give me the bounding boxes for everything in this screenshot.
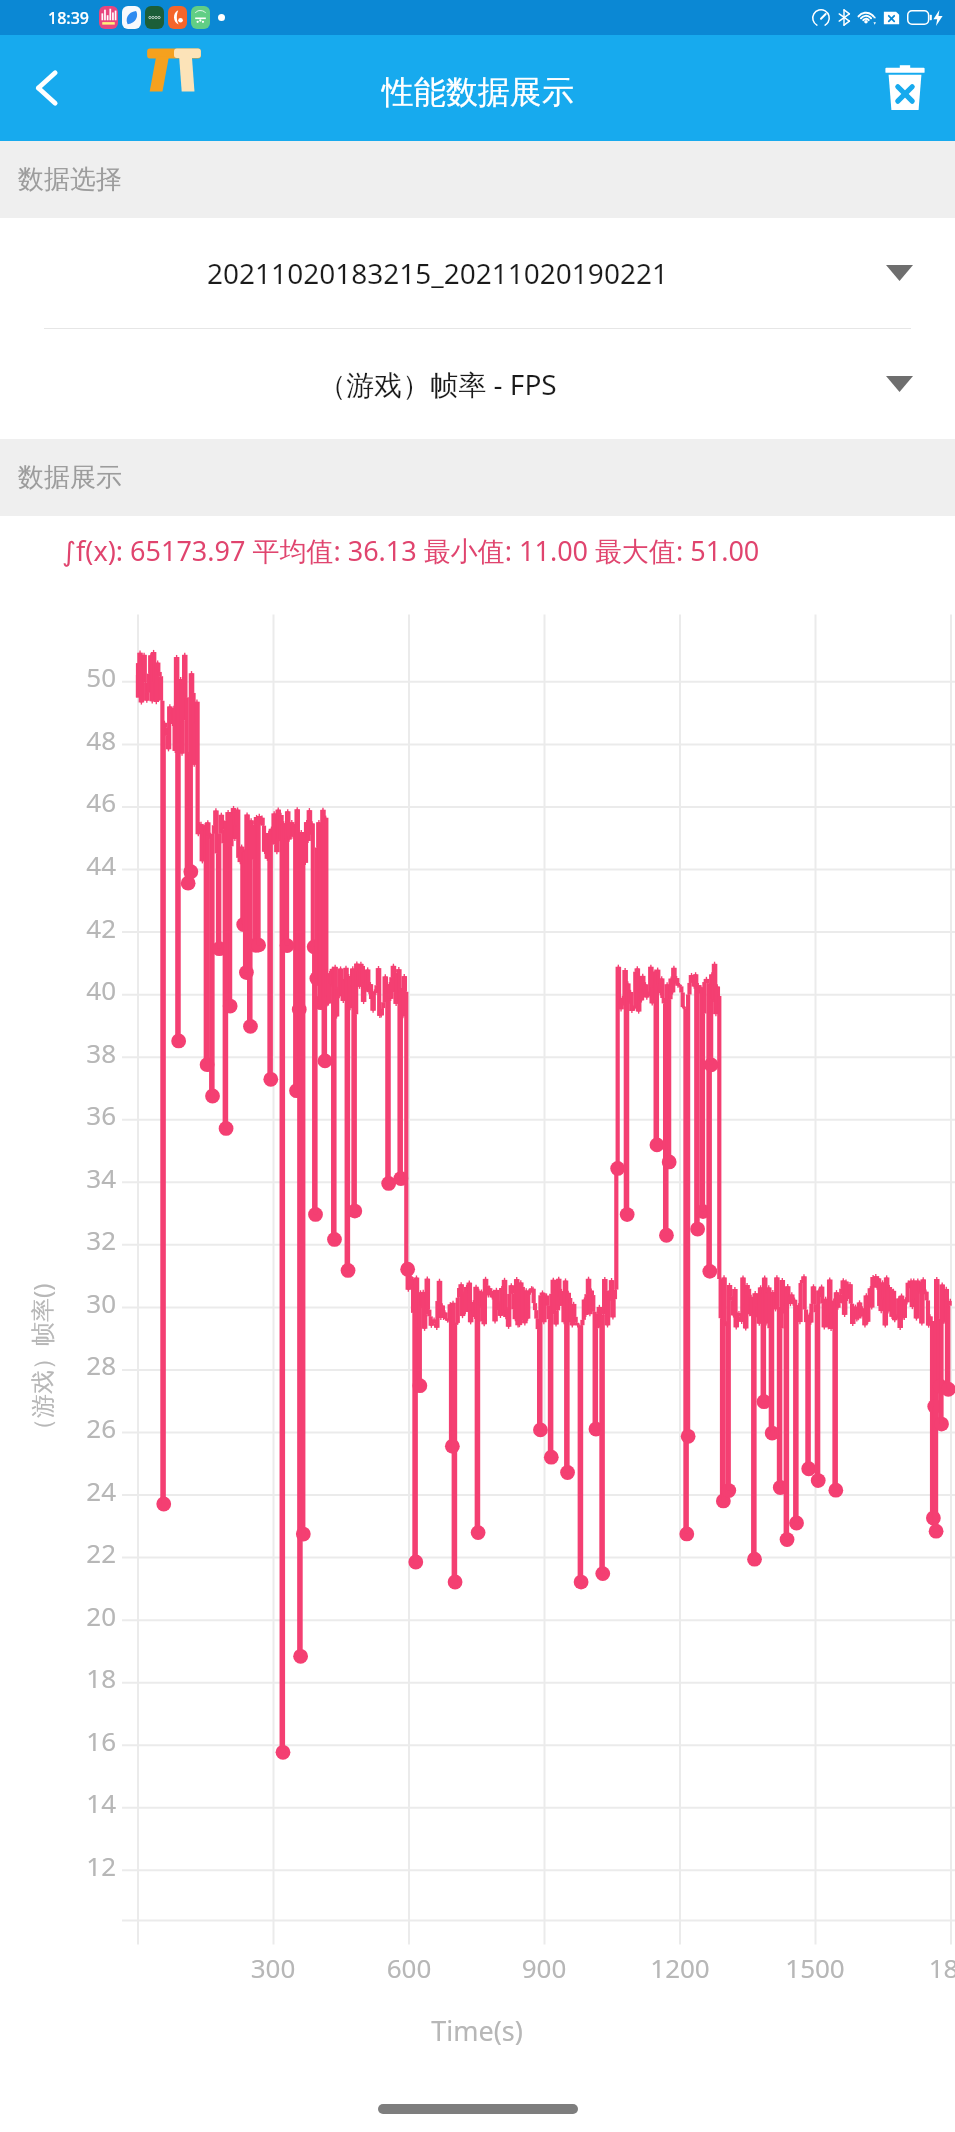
staticText: 性能数据展示	[382, 72, 574, 112]
staticText: 18	[56, 1660, 116, 1695]
staticText: 32	[56, 1222, 116, 1257]
staticText: 44	[56, 847, 116, 882]
staticText: 42	[56, 910, 116, 945]
staticText: （游戏）帧率()	[25, 1283, 58, 1442]
staticText: 30	[56, 1285, 116, 1320]
staticText: 26	[56, 1410, 116, 1445]
staticText: 数据展示	[18, 461, 122, 494]
staticText: 600	[369, 1950, 449, 1985]
staticText: 24	[56, 1473, 116, 1508]
staticText: 900	[504, 1950, 584, 1985]
staticText: 50	[56, 659, 116, 694]
staticText: 22	[56, 1535, 116, 1570]
button[interactable]: 20211020183215_20211020190221	[0, 218, 955, 328]
staticText: 300	[233, 1950, 313, 1985]
staticText: 数据选择	[18, 163, 122, 196]
staticText: 14	[56, 1785, 116, 1820]
staticText: 16	[56, 1723, 116, 1758]
button[interactable]: （游戏）帧率 - FPS	[0, 329, 955, 439]
staticText: 48	[56, 722, 116, 757]
staticText: 20211020183215_20211020190221	[207, 254, 668, 292]
staticText: Time(s)	[407, 2012, 547, 2049]
staticText: 28	[56, 1347, 116, 1382]
button[interactable]: Delete	[867, 50, 943, 126]
button[interactable]: Back	[10, 51, 84, 125]
staticText: 12	[56, 1848, 116, 1883]
staticText: 20	[56, 1598, 116, 1633]
staticText: 46	[56, 784, 116, 819]
staticText: 36	[56, 1097, 116, 1132]
staticText: ∫f(x): 65173.97 平均值: 36.13 最小值: 11.00 最大…	[62, 532, 929, 569]
staticText: 34	[56, 1160, 116, 1195]
staticText: 18:39	[48, 7, 89, 29]
staticText: 180	[911, 1950, 955, 1985]
staticText: 38	[56, 1035, 116, 1070]
staticText: 1200	[640, 1950, 720, 1985]
staticText: 40	[56, 972, 116, 1007]
staticText: 1500	[775, 1950, 855, 1985]
staticText: （游戏）帧率 - FPS	[318, 365, 557, 403]
